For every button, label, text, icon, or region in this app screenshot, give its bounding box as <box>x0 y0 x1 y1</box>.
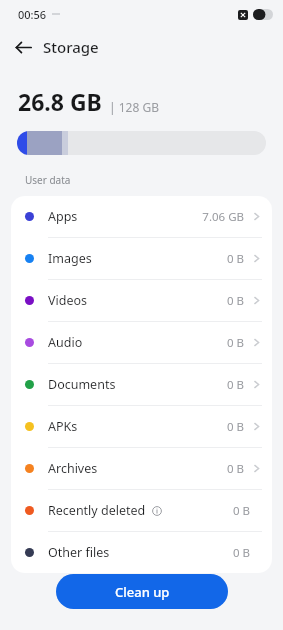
staticText: 0 B <box>226 461 244 477</box>
button[interactable]: Videos <box>11 280 272 321</box>
staticText: 0 B <box>232 545 250 561</box>
button[interactable]: Apps <box>11 196 272 237</box>
staticText: Other files <box>48 544 110 561</box>
staticText: 0 B <box>226 251 244 267</box>
button[interactable]: APKs <box>11 406 272 447</box>
staticText: Clean up <box>115 583 170 601</box>
staticText: 00:56 <box>18 7 47 22</box>
staticText: 0 B <box>232 503 250 519</box>
staticText: Recently deleted <box>48 502 146 519</box>
staticText: Apps <box>48 208 78 225</box>
staticText: 0 B <box>226 377 244 393</box>
staticText: 26.8 GB <box>18 86 102 117</box>
staticText: 0 B <box>226 293 244 309</box>
staticText: Storage <box>43 37 99 57</box>
staticText: APKs <box>48 418 78 435</box>
button[interactable]: Recently deleted <box>11 490 272 531</box>
staticText: Images <box>48 250 92 267</box>
button[interactable]: Images <box>11 238 272 279</box>
staticText: | 128 GB <box>109 99 159 115</box>
button[interactable]: Archives <box>11 448 272 489</box>
button[interactable]: Documents <box>11 364 272 405</box>
other: Info <box>152 506 162 516</box>
button[interactable]: Back <box>9 33 37 61</box>
staticText: 0 B <box>226 335 244 351</box>
staticText: 0 B <box>226 419 244 435</box>
button[interactable]: Other files <box>11 532 272 573</box>
staticText: Audio <box>48 334 83 351</box>
staticText: Videos <box>48 292 88 309</box>
button[interactable]: Audio <box>11 322 272 363</box>
staticText: 7.06 GB <box>202 209 244 225</box>
button[interactable]: Clean up <box>56 574 228 609</box>
staticText: User data <box>25 173 71 187</box>
staticText: Documents <box>48 376 116 393</box>
staticText: Archives <box>48 460 98 477</box>
